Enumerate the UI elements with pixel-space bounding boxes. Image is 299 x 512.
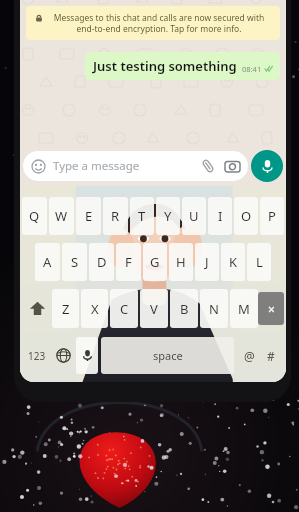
button[interactable]: C — [110, 289, 138, 328]
staticText: Just testing something — [93, 57, 237, 75]
staticText: H — [176, 253, 186, 271]
button[interactable]: N — [200, 289, 228, 328]
staticText: R — [111, 207, 120, 225]
button[interactable]: Shift — [22, 289, 52, 328]
staticText: Q — [29, 207, 40, 225]
button[interactable]: F — [116, 243, 141, 281]
button[interactable]: W — [49, 197, 74, 235]
staticText: Y — [164, 207, 172, 225]
staticText: Type a message — [53, 158, 200, 174]
staticText: O — [241, 207, 252, 225]
button[interactable]: G — [143, 243, 167, 281]
staticText: Z — [62, 300, 70, 318]
staticText: T — [138, 207, 146, 225]
staticText: U — [189, 207, 199, 225]
button[interactable]: J — [195, 243, 219, 281]
button[interactable]: M — [230, 289, 258, 328]
staticText: B — [180, 300, 189, 318]
staticText: E — [85, 207, 93, 225]
staticText: V — [150, 300, 158, 318]
staticText: K — [229, 253, 238, 271]
button[interactable]: 123 — [24, 332, 50, 379]
button[interactable]: Type a message — [23, 151, 248, 181]
staticText: A — [43, 253, 52, 271]
staticText: G — [150, 253, 160, 271]
staticText: 123 — [28, 349, 46, 363]
staticText: D — [97, 253, 107, 271]
button[interactable]: Y — [156, 197, 180, 235]
button[interactable]: Record voice message — [251, 150, 283, 182]
staticText: Messages to this chat and calls are now … — [47, 12, 271, 34]
button[interactable]: T — [130, 197, 154, 235]
button[interactable]: Change language — [50, 332, 76, 379]
staticText: X — [91, 300, 99, 318]
button[interactable]: # — [260, 332, 282, 379]
button[interactable]: S — [62, 243, 87, 281]
button[interactable]: U — [182, 197, 206, 235]
button[interactable]: D — [89, 243, 114, 281]
button[interactable]: L — [247, 243, 271, 281]
staticText: space — [153, 348, 183, 363]
button[interactable]: X — [81, 289, 108, 328]
button[interactable]: V — [140, 289, 168, 328]
staticText: @ — [244, 348, 255, 364]
staticText: N — [209, 300, 219, 318]
staticText: # — [267, 348, 275, 364]
button[interactable]: @ — [238, 332, 260, 379]
button[interactable]: Z — [52, 289, 79, 328]
button[interactable]: K — [221, 243, 245, 281]
button[interactable]: R — [103, 197, 128, 235]
staticText: × — [268, 301, 275, 317]
button[interactable]: O — [234, 197, 258, 235]
staticText: F — [125, 253, 132, 271]
staticText: 08:41 — [242, 64, 262, 74]
button[interactable]: Attach — [200, 158, 216, 174]
button[interactable]: Camera — [225, 159, 240, 174]
staticText: S — [71, 253, 79, 271]
button[interactable]: Voice input — [76, 337, 98, 374]
staticText: W — [55, 207, 68, 225]
staticText: C — [120, 300, 129, 318]
button[interactable]: B — [170, 289, 198, 328]
button[interactable]: P — [260, 197, 284, 235]
staticText: L — [256, 253, 263, 271]
staticText: I — [218, 207, 223, 225]
staticText: M — [238, 300, 250, 318]
button[interactable]: Backspace — [258, 292, 284, 325]
button[interactable]: Messages to this chat and calls are now … — [26, 6, 280, 40]
button[interactable]: space — [101, 337, 234, 374]
button[interactable]: Q — [22, 197, 47, 235]
button[interactable]: A — [35, 243, 60, 281]
button[interactable]: E — [76, 197, 101, 235]
button[interactable]: I — [208, 197, 232, 235]
staticText: P — [268, 207, 276, 225]
button[interactable]: Just testing something — [85, 52, 280, 80]
button[interactable]: H — [169, 243, 193, 281]
staticText: J — [205, 253, 209, 271]
